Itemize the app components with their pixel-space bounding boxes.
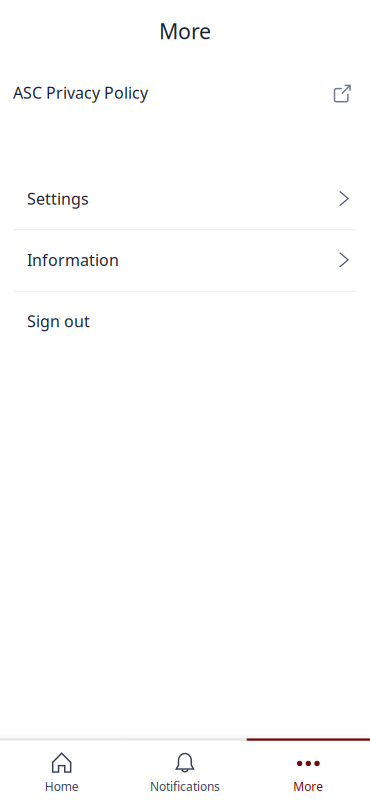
staticText: Sign out <box>27 310 90 332</box>
button[interactable]: More <box>247 741 370 800</box>
button[interactable]: Settings <box>0 168 370 229</box>
staticText: ASC Privacy Policy <box>13 82 148 103</box>
staticText: Information <box>27 249 119 270</box>
button[interactable]: Sign out <box>0 290 370 352</box>
button[interactable]: Home <box>0 741 123 800</box>
staticText: Notifications <box>150 778 220 794</box>
staticText: Home <box>45 778 79 794</box>
staticText: More <box>293 778 323 794</box>
button[interactable]: Notifications <box>123 741 247 800</box>
staticText: More <box>159 17 211 45</box>
button[interactable]: ASC Privacy Policy <box>0 62 370 123</box>
button[interactable]: Information <box>0 229 370 290</box>
staticText: Settings <box>27 188 89 209</box>
